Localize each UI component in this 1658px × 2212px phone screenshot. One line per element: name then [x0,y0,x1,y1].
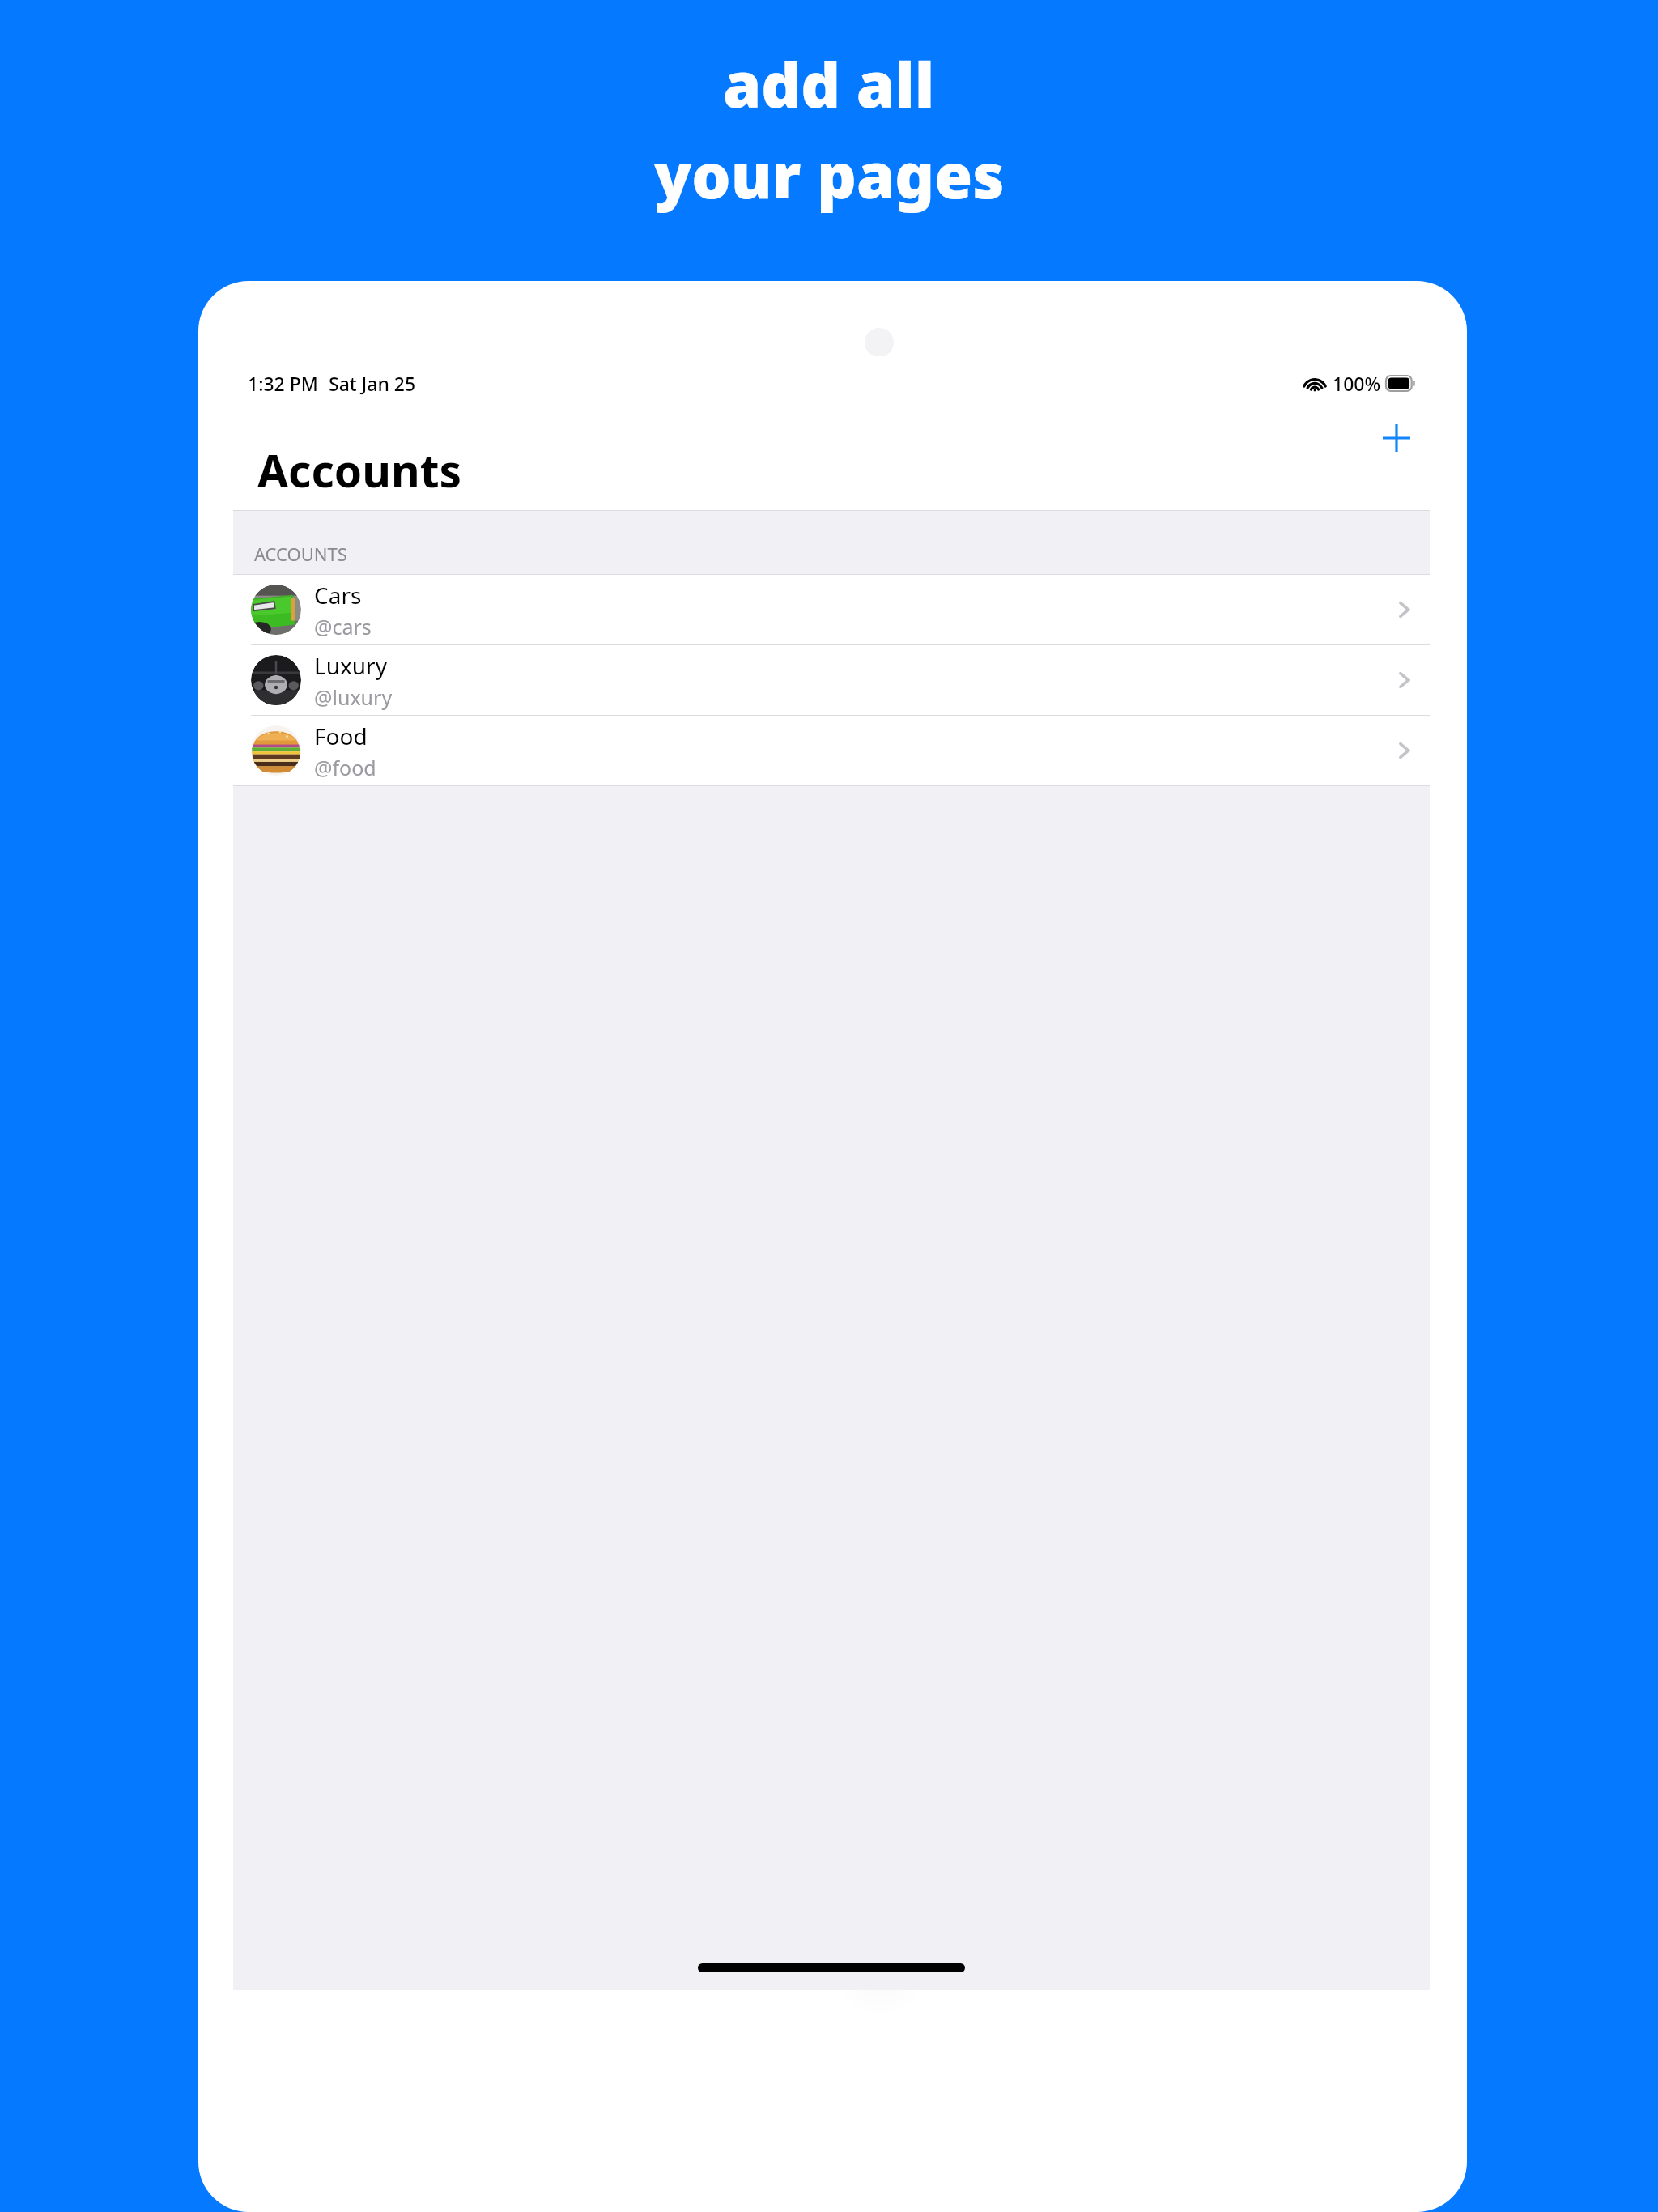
staticText: your pages [654,133,1005,217]
button[interactable]: Luxury [233,645,1430,715]
staticText: Luxury [314,650,387,681]
staticText: Cars [314,580,362,610]
button[interactable]: Cars [233,575,1430,644]
staticText: Food [314,721,368,751]
staticText: @food [314,754,376,781]
staticText: 1:32 PM [248,371,318,396]
staticText: add all [723,42,935,126]
staticText: Sat Jan 25 [329,371,416,396]
button[interactable]: Food [233,716,1430,785]
staticText: Accounts [257,440,462,500]
staticText: 100% [1333,371,1381,396]
button[interactable]: Add account [1370,411,1423,465]
staticText: ACCOUNTS [254,542,347,566]
staticText: @luxury [314,683,393,711]
staticText: @cars [314,613,372,640]
